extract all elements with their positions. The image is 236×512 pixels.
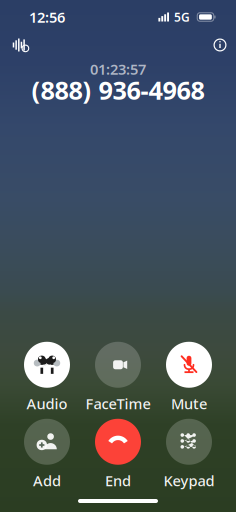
button[interactable]: FaceTime — [82, 343, 153, 412]
staticText: End — [105, 471, 131, 490]
button[interactable]: Keypad — [153, 420, 224, 489]
staticText: 01:23:57 — [90, 59, 146, 79]
staticText: Audio — [26, 394, 67, 413]
staticText: Add — [33, 471, 61, 490]
staticText: FaceTime — [85, 394, 150, 413]
staticText: Mute — [171, 394, 207, 413]
staticText: 5G — [174, 9, 190, 25]
button[interactable]: Call details — [208, 34, 232, 56]
button[interactable]: Audio — [11, 343, 82, 412]
button[interactable]: End — [82, 420, 153, 489]
staticText: 12:56 — [29, 7, 65, 27]
staticText: Keypad — [163, 471, 214, 490]
button[interactable]: Mute — [153, 343, 224, 412]
staticText: (888) 936-4968 — [31, 73, 204, 107]
button[interactable]: Add — [11, 420, 82, 489]
button[interactable]: Live audio — [6, 34, 34, 56]
